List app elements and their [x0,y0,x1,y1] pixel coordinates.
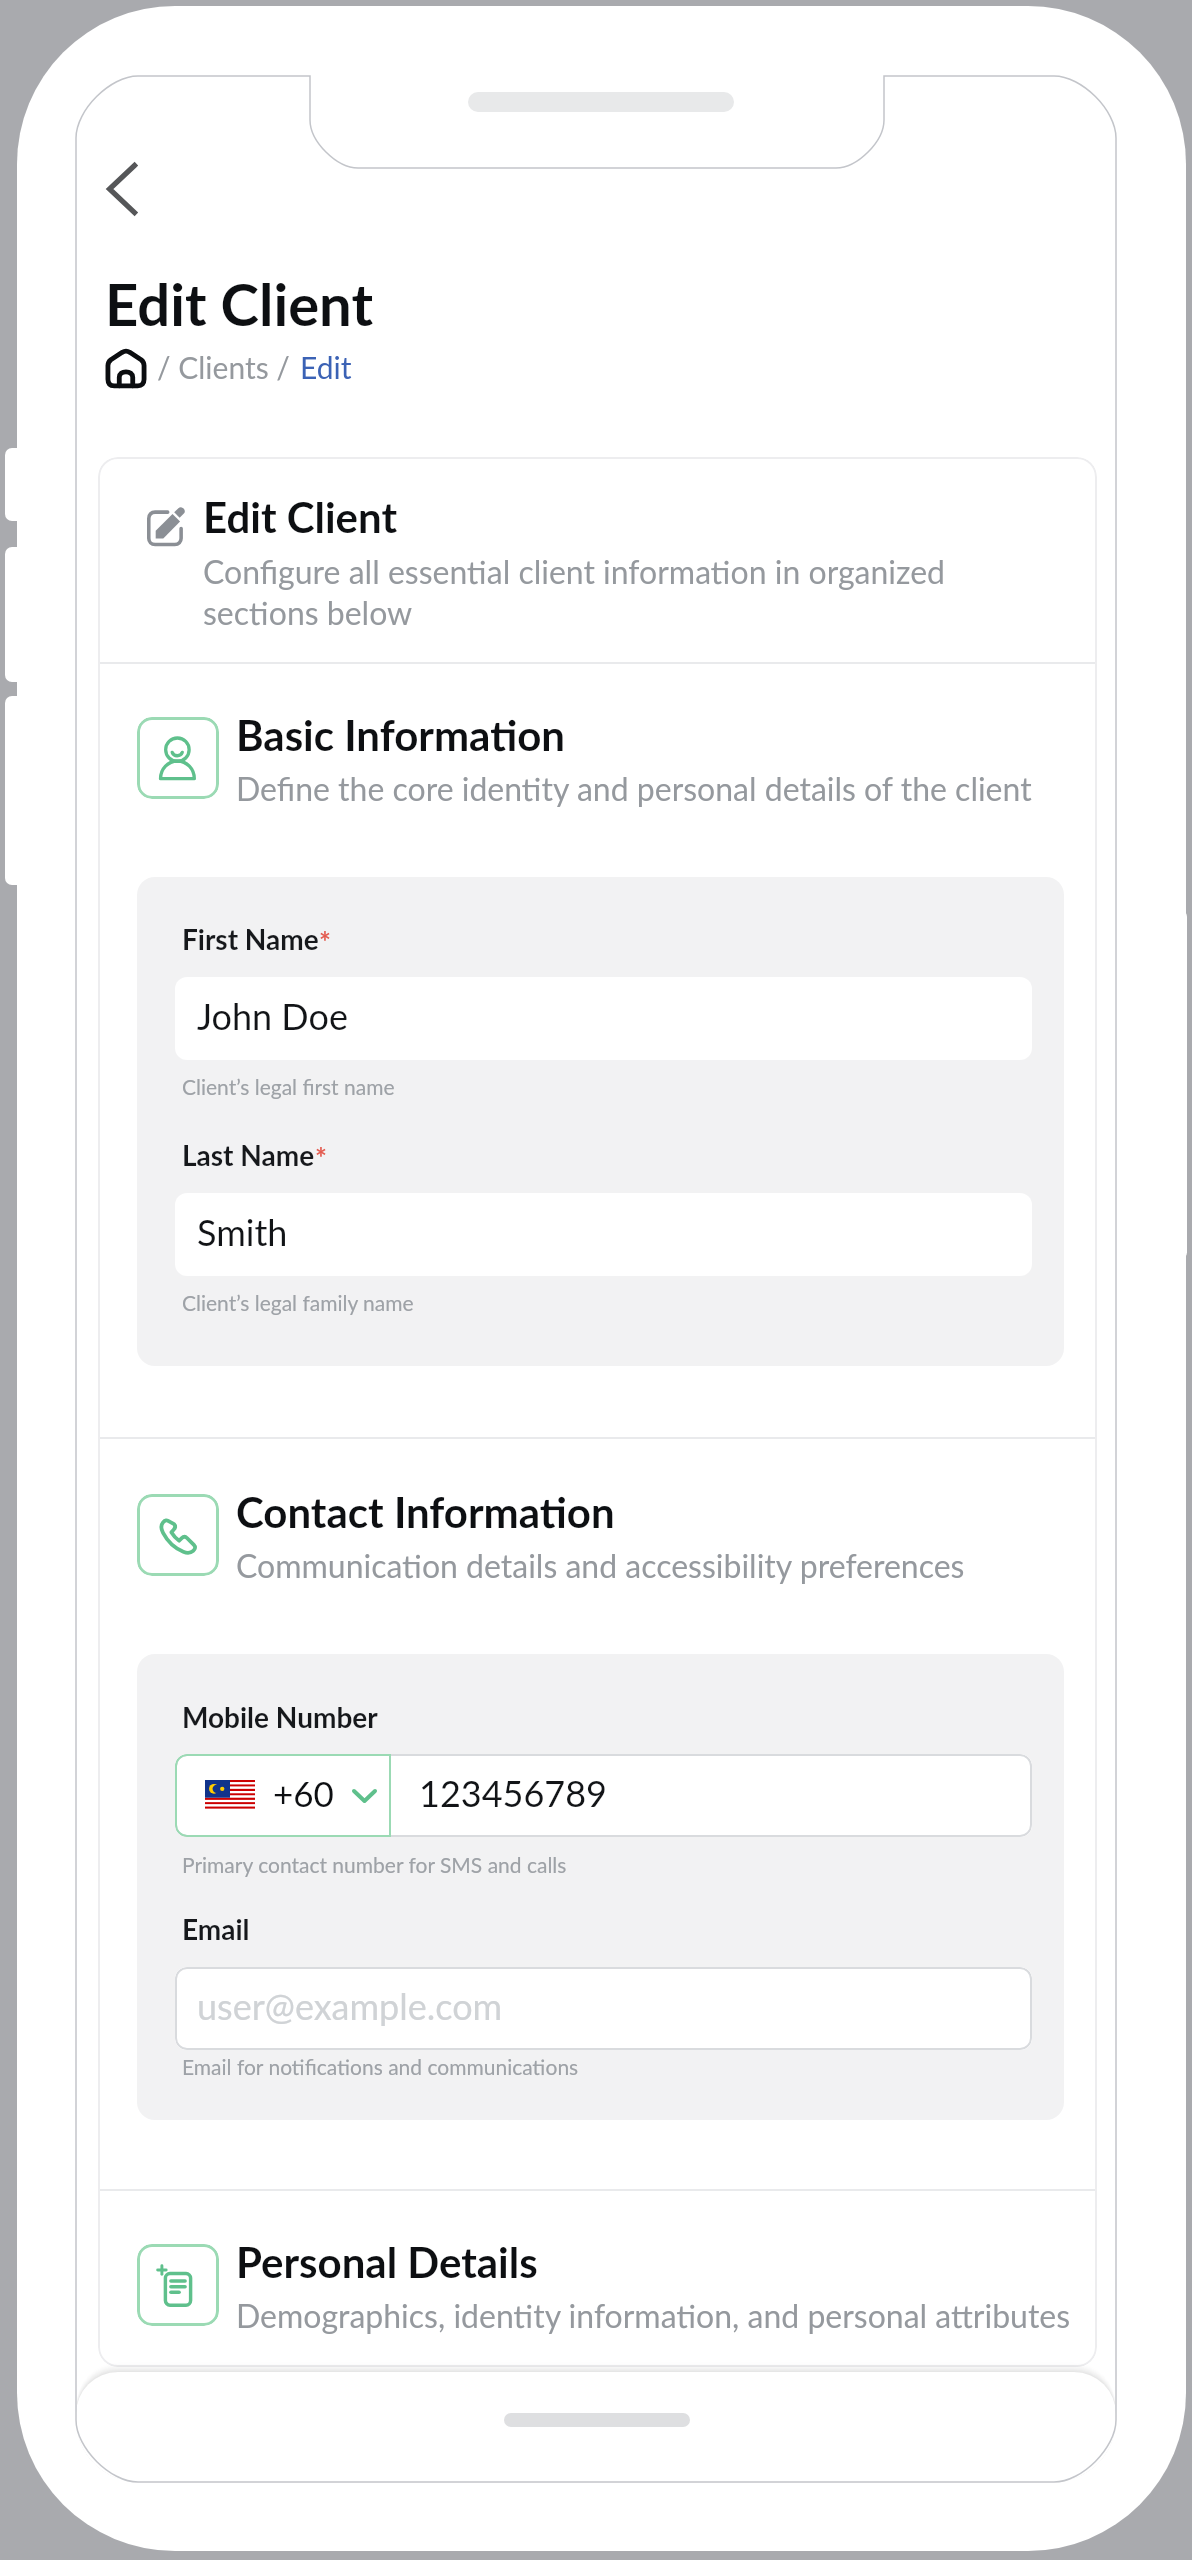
staticText: Client’s legal first name [182,1074,395,1099]
button[interactable]: John Doe [175,977,1032,1060]
staticText: * [319,924,331,958]
staticText: John Doe [197,994,348,1037]
staticText: Smith [197,1210,288,1253]
staticText: Communication details and accessibility … [236,1546,965,1584]
staticText: 123456789 [419,1771,607,1814]
staticText: Email for notifications and communicatio… [182,2054,579,2079]
button[interactable]: Home [101,345,151,393]
staticText: Demographics, identity information, and … [236,2296,1071,2334]
staticText: Edit Client [105,269,373,339]
button[interactable]: Select country code [175,1754,391,1837]
staticText: Configure all essential client informati… [203,552,945,632]
staticText: Primary contact number for SMS and calls [182,1852,567,1877]
staticText: / Clients / [157,349,298,385]
staticText: Define the core identity and personal de… [236,769,1032,807]
staticText: Last Name [182,1138,315,1172]
staticText: Basic Information [236,710,565,760]
staticText: Client’s legal family name [182,1290,414,1315]
staticText: Edit Client [203,492,398,542]
staticText: Personal Details [236,2237,538,2287]
staticText: * [315,1140,327,1174]
staticText: Email [182,1912,250,1946]
staticText: Contact Information [236,1487,615,1537]
button[interactable]: Smith [175,1193,1032,1276]
button[interactable] [391,1754,1032,1837]
button[interactable]: Back [83,138,161,239]
staticText: Mobile Number [182,1700,378,1734]
button[interactable]: Edit [300,349,352,385]
staticText: First Name [182,922,319,956]
staticText: +60 [273,1772,334,1814]
staticText: user@example.com [197,1984,503,2027]
button[interactable]: user@example.com [175,1967,1032,2050]
